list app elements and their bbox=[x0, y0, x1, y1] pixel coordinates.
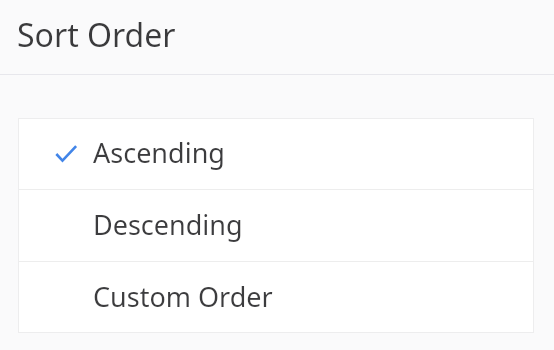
staticText: Sort Order bbox=[17, 13, 176, 57]
staticText: Descending bbox=[93, 206, 243, 243]
staticText: Ascending bbox=[93, 134, 225, 171]
button[interactable]: Descending bbox=[18, 190, 534, 261]
staticText: Custom Order bbox=[93, 278, 273, 315]
button[interactable]: Selected bbox=[18, 118, 534, 189]
button[interactable]: Custom Order bbox=[18, 262, 534, 333]
other: Selected bbox=[55, 143, 77, 165]
